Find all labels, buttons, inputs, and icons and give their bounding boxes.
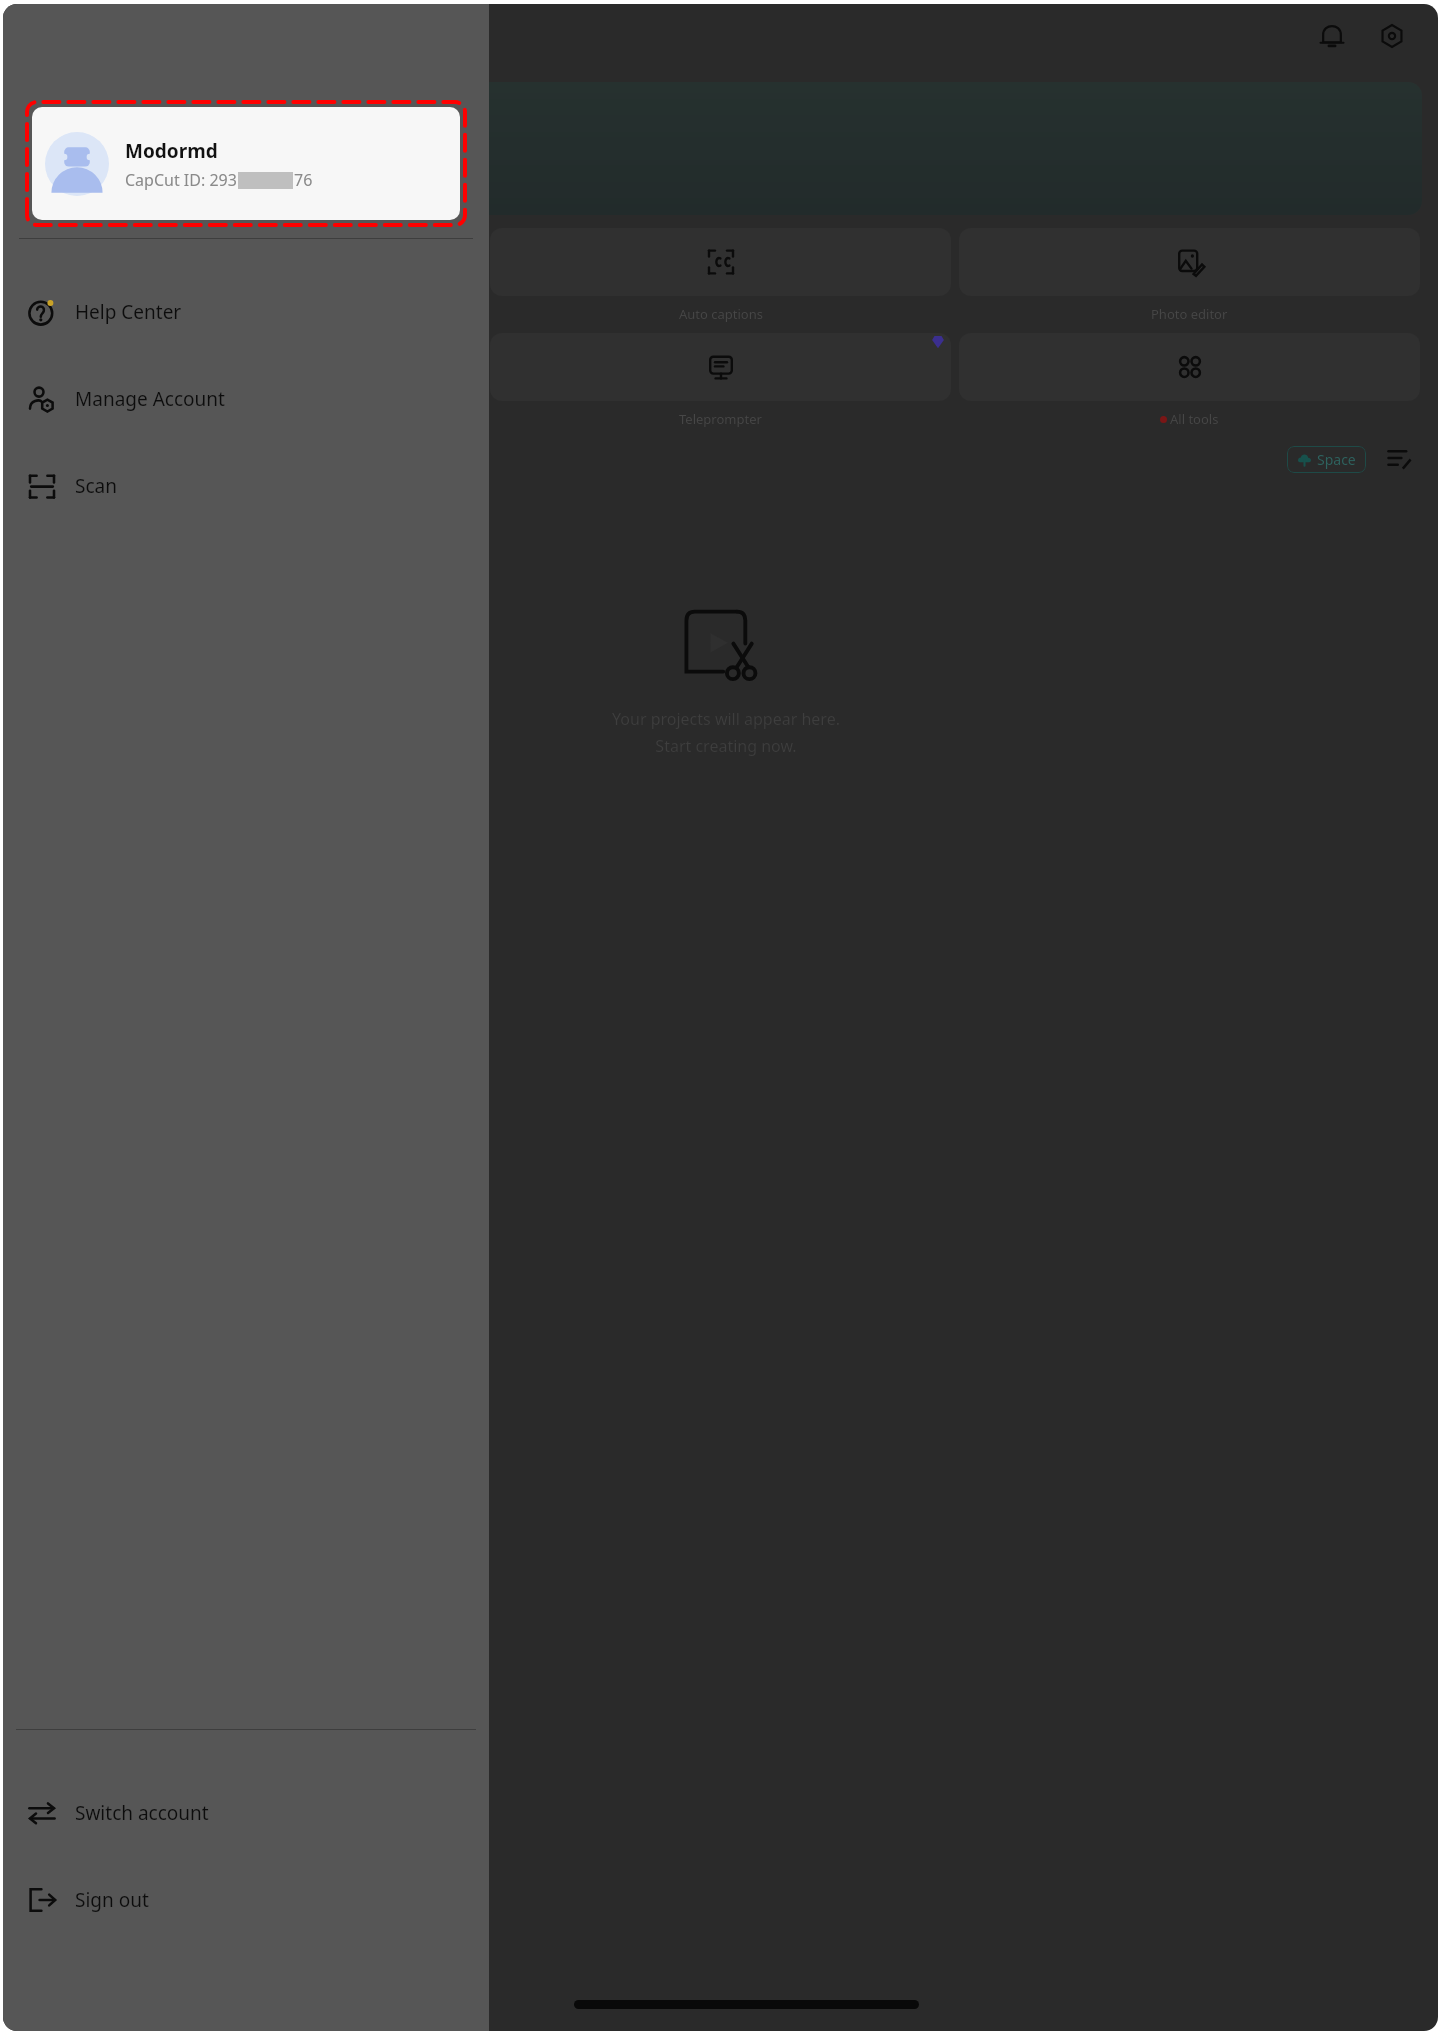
staticText: Scan	[75, 473, 117, 499]
button[interactable]: Photo editor	[959, 228, 1420, 323]
staticText: New project	[112, 134, 239, 163]
button[interactable]: Switch account	[3, 1769, 489, 1856]
button[interactable]: Edit list	[1382, 442, 1416, 476]
button[interactable]: New project	[19, 82, 1422, 215]
button[interactable]: Sign out	[3, 1856, 489, 1943]
button[interactable]: Teleprompter	[490, 333, 951, 428]
button[interactable]: Settings	[1368, 12, 1416, 60]
button[interactable]: All tools	[959, 333, 1420, 428]
staticText: Photo editor	[1151, 305, 1228, 323]
staticText: Your projects will appear here. Start cr…	[612, 708, 840, 757]
button[interactable]: Modormd	[32, 107, 460, 220]
button[interactable]: Camera	[21, 333, 482, 428]
staticText: Modormd	[125, 138, 218, 164]
staticText: Switch account	[75, 1800, 209, 1826]
button[interactable]: Notifications	[1308, 12, 1356, 60]
staticText: Sign out	[75, 1887, 149, 1913]
button[interactable]: Manage Account	[3, 355, 489, 442]
button[interactable]: Retouch	[21, 228, 482, 323]
button[interactable]: Space	[1287, 446, 1366, 473]
staticText: Manage Account	[75, 386, 225, 412]
staticText: CapCut ID: 293	[125, 169, 237, 191]
staticText: All tools	[1170, 410, 1219, 428]
button[interactable]: Help Center	[3, 268, 489, 355]
staticText: Space	[1317, 450, 1356, 469]
staticText: 76	[294, 169, 313, 191]
staticText: Teleprompter	[679, 410, 762, 428]
button[interactable]: Auto captions	[490, 228, 951, 323]
staticText: Auto captions	[679, 305, 763, 323]
button[interactable]: Scan	[3, 442, 489, 529]
staticText: Help Center	[75, 299, 182, 325]
